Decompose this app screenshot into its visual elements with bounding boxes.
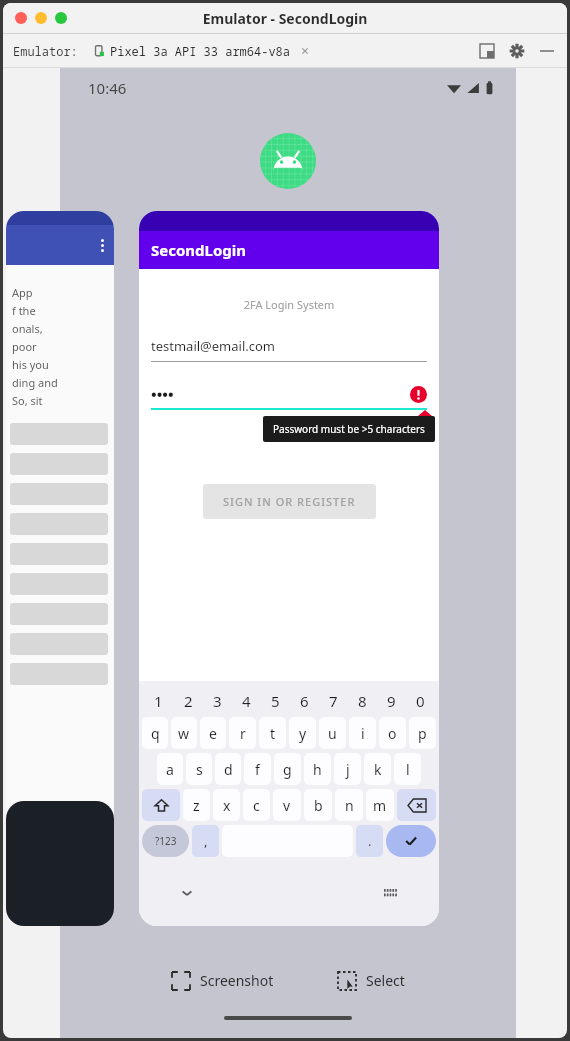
button[interactable]: Pixel 3a API 33 arm64-v8a [93, 43, 311, 59]
button[interactable]: Home [224, 1016, 352, 1020]
staticText: •••• [151, 384, 174, 404]
button[interactable]: e [200, 717, 226, 749]
button[interactable]: SecondLogin app icon [260, 133, 316, 189]
button[interactable]: Screenshot [164, 965, 282, 996]
staticText: 5 [271, 691, 280, 711]
button[interactable]: Select [330, 965, 413, 996]
staticText: 0 [416, 691, 425, 711]
staticText: e [209, 724, 217, 743]
staticText: z [193, 796, 200, 815]
staticText: App [12, 285, 33, 300]
button[interactable]: h [304, 753, 331, 785]
button[interactable]: u [319, 717, 346, 749]
button[interactable]: Switch keyboard [383, 888, 397, 898]
button[interactable]: 6 [290, 687, 319, 715]
button[interactable]: p [409, 717, 436, 749]
button[interactable]: m [366, 789, 394, 821]
button[interactable]: v [273, 789, 301, 821]
staticText: SecondLogin [151, 240, 247, 260]
button[interactable]: s [186, 753, 212, 785]
button[interactable]: Hide keyboard [177, 883, 197, 903]
button[interactable]: a [157, 753, 183, 785]
staticText: Screenshot [200, 971, 274, 990]
button[interactable]: 3 [203, 687, 232, 715]
staticText: testmail@email.com [151, 337, 276, 355]
button[interactable]: f [244, 753, 271, 785]
button[interactable]: n [335, 789, 363, 821]
button[interactable]: d [215, 753, 241, 785]
button[interactable]: 8 [348, 687, 377, 715]
staticText: r [240, 724, 246, 743]
staticText: m [373, 796, 387, 815]
staticText: , [204, 832, 208, 850]
button[interactable]: Enter [386, 825, 436, 857]
staticText: . [368, 832, 372, 850]
button[interactable]: Split window [479, 43, 495, 59]
button[interactable]: Minimize window [539, 43, 555, 59]
staticText: s [196, 760, 203, 779]
staticText: 8 [358, 691, 367, 711]
button[interactable]: Recent app dark [6, 801, 114, 926]
button[interactable]: 9 [377, 687, 406, 715]
button[interactable]: Maximize [55, 12, 67, 24]
button[interactable]: c [243, 789, 270, 821]
button[interactable]: 1 [143, 687, 173, 715]
staticText: his you [12, 357, 49, 372]
button[interactable]: 5 [261, 687, 290, 715]
staticText: o [388, 724, 397, 743]
button[interactable]: Backspace [397, 789, 436, 821]
staticText: Select [366, 971, 405, 990]
button[interactable]: o [379, 717, 406, 749]
staticText: l [406, 760, 410, 779]
button[interactable]: l [394, 753, 421, 785]
button[interactable]: r [229, 717, 256, 749]
button[interactable]: Recent app [6, 211, 114, 851]
button[interactable]: Close [15, 12, 27, 24]
staticText: k [374, 760, 382, 779]
staticText: 7 [329, 691, 338, 711]
button[interactable]: Shift [142, 789, 180, 821]
staticText: f [255, 760, 260, 779]
button[interactable]: Close tab [299, 45, 311, 57]
button[interactable]: Period [356, 825, 383, 857]
button[interactable]: y [289, 717, 316, 749]
button[interactable]: SIGN IN OR REGISTER [203, 484, 376, 519]
button[interactable]: i [349, 717, 376, 749]
button[interactable]: Error [410, 386, 427, 403]
staticText: j [346, 760, 350, 779]
staticText: 9 [387, 691, 396, 711]
button[interactable]: g [274, 753, 301, 785]
button[interactable]: Minimize [35, 12, 47, 24]
button[interactable]: x [213, 789, 240, 821]
staticText: Emulator: [13, 43, 78, 59]
button[interactable]: Settings [509, 43, 525, 59]
button[interactable]: 4 [232, 687, 261, 715]
staticText: Pixel 3a API 33 arm64-v8a [110, 43, 291, 59]
staticText: 4 [242, 691, 251, 711]
button[interactable]: 2 [173, 687, 203, 715]
staticText: t [270, 724, 276, 743]
staticText: i [361, 724, 365, 743]
staticText: h [313, 760, 322, 779]
button[interactable]: j [334, 753, 361, 785]
staticText: p [418, 724, 427, 743]
staticText: n [345, 796, 354, 815]
button[interactable]: q [142, 717, 168, 749]
staticText: q [151, 724, 160, 743]
staticText: SIGN IN OR REGISTER [223, 494, 356, 509]
button[interactable]: 7 [319, 687, 348, 715]
button[interactable]: 0 [406, 687, 435, 715]
button[interactable]: k [364, 753, 391, 785]
button[interactable]: Comma [192, 825, 219, 857]
staticText: 2 [184, 691, 193, 711]
button[interactable]: t [259, 717, 286, 749]
staticText: onals, [12, 321, 43, 336]
button[interactable]: ?123 [142, 825, 189, 857]
staticText: 6 [300, 691, 309, 711]
button[interactable]: b [304, 789, 332, 821]
button[interactable]: z [183, 789, 210, 821]
button[interactable]: SecondLogin recent task [139, 211, 439, 926]
button[interactable]: w [171, 717, 197, 749]
staticText: 1 [154, 691, 163, 711]
